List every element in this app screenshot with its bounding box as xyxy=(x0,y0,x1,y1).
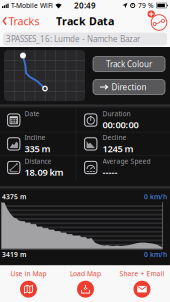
staticText: Share + Email xyxy=(119,269,164,278)
staticText: Load Map xyxy=(70,269,101,278)
staticText: 20:49 xyxy=(74,0,96,11)
staticText: Tracks xyxy=(8,14,39,28)
staticText: Date xyxy=(24,109,39,118)
staticText: Distance xyxy=(24,157,51,165)
button[interactable]: Use in Map xyxy=(10,269,46,298)
staticText: Track Colour xyxy=(106,59,152,69)
staticText: 18.09 km xyxy=(24,166,63,178)
staticText: Average Speed xyxy=(102,157,150,165)
staticText: 0 km/h xyxy=(144,250,167,259)
button[interactable]: Share + Email xyxy=(119,269,164,298)
staticText: 3419 m xyxy=(2,250,26,259)
staticText: Duration xyxy=(102,109,130,118)
button[interactable]: 3PASSES_16: Lumde - Namche Bazar xyxy=(0,32,170,45)
staticText: 4375 m xyxy=(2,192,26,201)
staticText: 335 m xyxy=(24,142,50,155)
staticText: 0 km/h xyxy=(144,192,167,201)
staticText: ----- xyxy=(102,166,117,178)
staticText: 3PASSES_16: Lumde - Namche Bazar xyxy=(6,34,140,44)
staticText: Incline xyxy=(24,133,45,142)
staticText: Use in Map xyxy=(10,269,46,278)
button[interactable]: Track Colour xyxy=(93,56,165,71)
staticText: 1245 m xyxy=(102,142,133,155)
staticText: Decline xyxy=(102,133,126,142)
staticText: Track Data xyxy=(56,14,114,28)
staticText: Direction xyxy=(111,82,146,92)
button[interactable] xyxy=(148,11,170,31)
staticText: 00:00:00 xyxy=(102,118,138,131)
button[interactable]: Direction xyxy=(93,79,165,94)
button[interactable]: Tracks xyxy=(0,14,39,28)
staticText: T-Mobile WiFi xyxy=(11,1,53,10)
staticText: 79 % xyxy=(138,1,154,10)
button[interactable]: Load Map xyxy=(70,269,101,298)
